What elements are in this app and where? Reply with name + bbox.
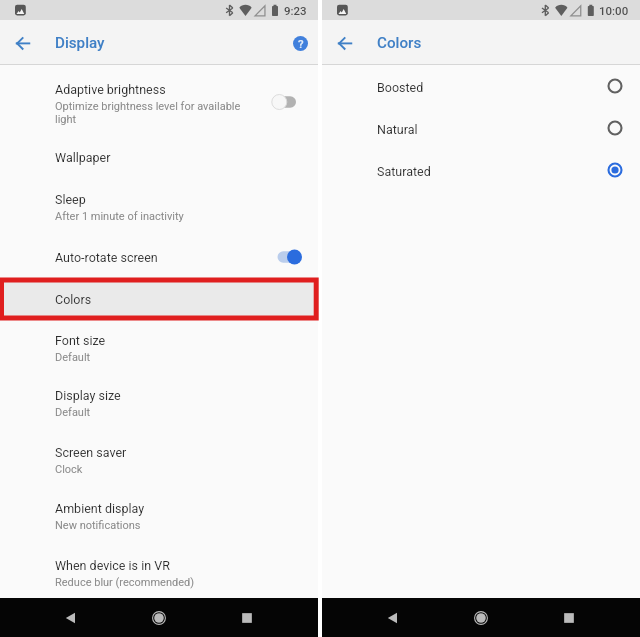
staticText: After 1 minute of inactivity [55,210,184,223]
staticText: Display [55,34,105,52]
button[interactable]: Back [47,598,95,637]
staticText: Boosted [377,80,424,95]
staticText: 10:00 [599,4,629,17]
staticText: Font size [55,333,106,348]
button[interactable]: Sleep [0,180,318,236]
staticText: Optimize brightness level for available … [55,100,245,125]
button[interactable]: Saturated [322,149,640,191]
staticText: Colors [377,34,422,52]
staticText: Auto-rotate screen [55,250,158,265]
staticText: Default [55,351,91,364]
staticText: Reduce blur (recommended) [55,576,195,589]
button[interactable]: Ambient display [0,488,318,544]
button[interactable]: Recent apps [545,598,593,637]
staticText: Ambient display [55,501,145,516]
button[interactable]: On [270,247,302,267]
button[interactable]: Back [369,598,417,637]
button[interactable]: Wallpaper [0,138,318,180]
button[interactable]: Adaptive brightness [0,65,318,138]
staticText: Wallpaper [55,150,111,165]
button[interactable]: Navigate up [5,25,41,61]
staticText: Natural [377,122,418,137]
staticText: Saturated [377,164,431,179]
button[interactable]: Not selected [605,118,625,138]
button[interactable]: Navigate up [327,25,363,61]
button[interactable]: Not selected [605,76,625,96]
staticText: Colors [55,292,92,307]
button[interactable]: Display size [0,376,318,432]
staticText: 9:23 [284,4,307,17]
button[interactable]: Screen saver [0,432,318,488]
staticText: New notifications [55,519,141,532]
button[interactable]: Home [135,598,183,637]
staticText: When device is in VR [55,558,170,573]
button[interactable]: Boosted [322,65,640,107]
button[interactable]: Home [457,598,505,637]
button[interactable]: Off [270,92,302,112]
staticText: Default [55,406,91,419]
button[interactable]: Font size [0,320,318,376]
staticText: Clock [55,463,83,476]
staticText: Screen saver [55,445,127,460]
button[interactable]: Help [293,36,308,51]
button[interactable]: Recent apps [223,598,271,637]
staticText: Adaptive brightness [55,82,166,97]
button[interactable]: When device is in VR [0,544,318,598]
staticText: Display size [55,388,121,403]
button[interactable]: Auto-rotate screen [0,236,318,278]
button[interactable]: Selected [605,160,625,180]
staticText: Sleep [55,192,86,207]
button[interactable]: Natural [322,107,640,149]
staticText: ? [298,37,304,50]
button[interactable]: Colors [0,278,318,320]
